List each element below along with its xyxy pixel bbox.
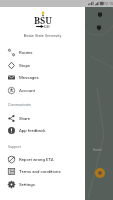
button[interactable]: Terms and conditions [0, 165, 85, 178]
staticText: Account [19, 88, 35, 93]
staticText: Stops [19, 63, 31, 68]
staticText: App feedback [19, 128, 46, 133]
button[interactable]: Bus [96, 11, 104, 19]
button[interactable]: Bus [95, 24, 103, 32]
staticText: Communicate [8, 103, 32, 107]
staticText: Bowie State University [0, 33, 85, 37]
button[interactable]: Settings [0, 178, 85, 191]
button[interactable]: My location [95, 168, 105, 178]
staticText: Share [19, 116, 31, 121]
staticText: GO [44, 24, 50, 29]
staticText: Settings [19, 182, 35, 187]
button[interactable]: Account [0, 84, 85, 97]
staticText: Messages [19, 75, 39, 80]
staticText: Bowie [93, 148, 102, 152]
staticText: BSU [34, 14, 52, 26]
staticText: Routes [19, 50, 33, 55]
button[interactable]: Messages [0, 71, 85, 84]
button[interactable]: Share [0, 112, 85, 125]
button[interactable]: Stops [0, 59, 85, 72]
button[interactable]: Report wrong ETA [0, 153, 85, 166]
staticText: 12:15 [104, 2, 113, 6]
button[interactable]: App feedback [0, 124, 85, 137]
button[interactable]: Routes [0, 46, 85, 59]
staticText: Support [8, 145, 22, 149]
staticText: Report wrong ETA [19, 157, 54, 162]
staticText: Terms and conditions [19, 169, 61, 174]
